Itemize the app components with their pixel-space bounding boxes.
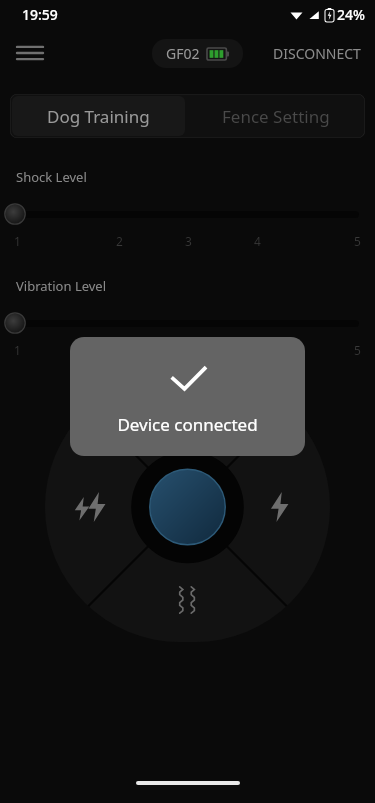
button[interactable]: Strong shock xyxy=(59,476,121,538)
staticText: Dog Training xyxy=(47,105,150,128)
staticText: Shock Level xyxy=(16,168,87,186)
staticText: 1 xyxy=(14,342,21,358)
staticText: DISCONNECT xyxy=(273,44,361,63)
button[interactable]: DISCONNECT xyxy=(259,34,375,73)
button[interactable] xyxy=(0,312,375,334)
staticText: 5 xyxy=(354,233,361,249)
button[interactable]: Menu xyxy=(8,31,52,75)
button[interactable]: Dog Training xyxy=(12,96,185,136)
button[interactable]: Fence Setting xyxy=(187,94,365,138)
button[interactable]: GF02 xyxy=(152,39,243,68)
button[interactable]: Shock xyxy=(248,476,310,538)
staticText: Vibration Level xyxy=(16,277,107,295)
staticText: 4 xyxy=(254,233,261,249)
staticText: Device connected xyxy=(117,413,258,436)
button[interactable]: Activate xyxy=(112,431,264,583)
staticText: 5 xyxy=(354,342,361,358)
staticText: 2 xyxy=(116,233,123,249)
button[interactable] xyxy=(0,203,375,225)
staticText: Fence Setting xyxy=(222,105,330,128)
staticText: 1 xyxy=(14,233,21,249)
staticText: GF02 xyxy=(166,44,200,63)
button[interactable]: Device connected xyxy=(70,337,305,456)
button[interactable]: Tone xyxy=(148,374,228,426)
staticText: 19:59 xyxy=(22,5,58,24)
button[interactable]: Vibrate xyxy=(148,572,228,628)
staticText: 3 xyxy=(185,233,192,249)
staticText: 24% xyxy=(337,5,365,24)
